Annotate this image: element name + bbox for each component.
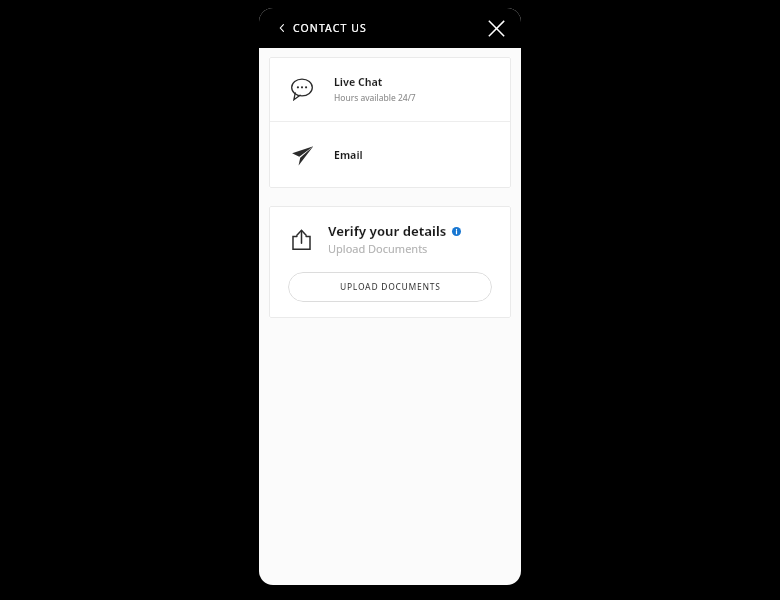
button[interactable]: Live Chat: [269, 57, 511, 121]
button[interactable]: Email: [269, 122, 511, 188]
staticText: CONTACT US: [293, 21, 367, 35]
staticText: Verify your details: [328, 222, 447, 240]
staticText: Email: [334, 148, 363, 162]
button[interactable]: Information: [452, 227, 461, 236]
staticText: Live Chat: [334, 75, 383, 89]
staticText: UPLOAD DOCUMENTS: [340, 281, 441, 293]
button[interactable]: UPLOAD DOCUMENTS: [288, 272, 492, 302]
staticText: Upload Documents: [328, 241, 428, 256]
button[interactable]: Close: [479, 11, 513, 45]
staticText: Hours available 24/7: [334, 92, 416, 104]
button[interactable]: Back: [269, 15, 295, 41]
